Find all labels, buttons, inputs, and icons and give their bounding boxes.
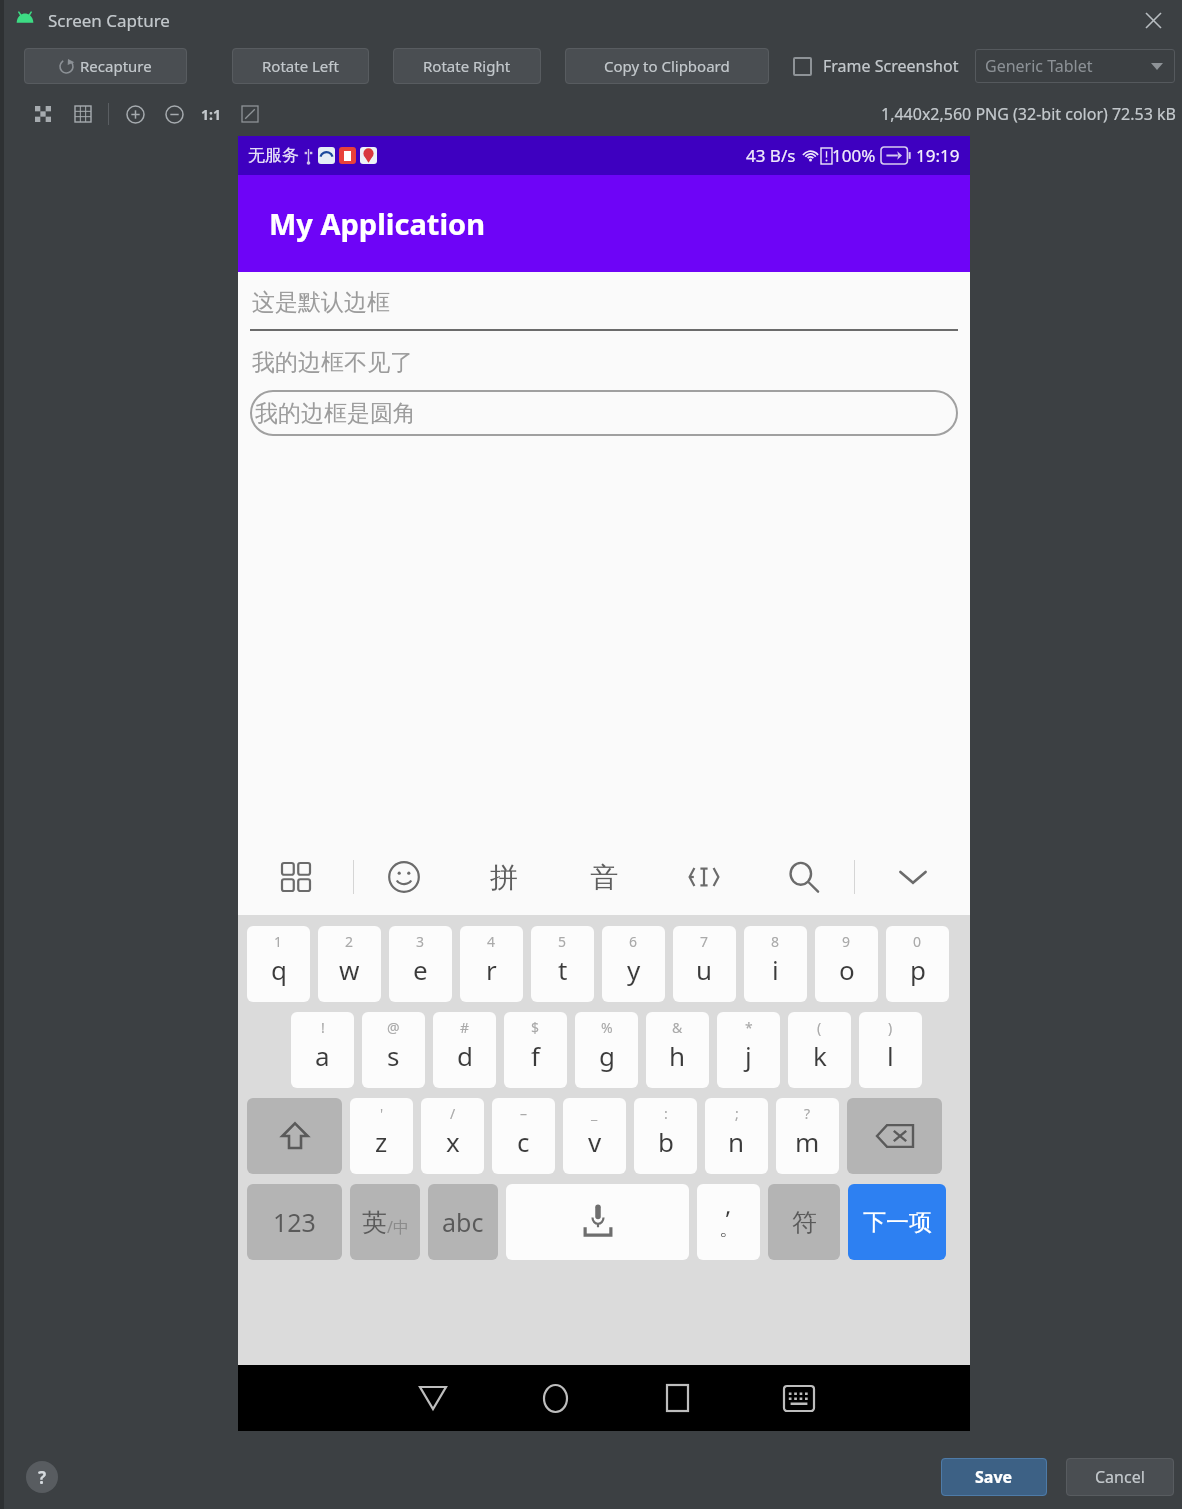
button[interactable]: 英 xyxy=(350,1184,420,1260)
button[interactable]: , xyxy=(697,1184,760,1260)
staticText: 拼 xyxy=(490,860,518,895)
button[interactable]: $ xyxy=(504,1012,567,1088)
button[interactable]: Home xyxy=(494,1365,616,1431)
staticText: k xyxy=(813,1038,827,1073)
staticText: Screen Capture xyxy=(48,9,170,32)
button[interactable]: Voice input xyxy=(506,1184,689,1260)
button[interactable]: Search xyxy=(754,839,854,915)
staticText: 4 xyxy=(487,932,496,951)
button[interactable]: 下一项 xyxy=(848,1184,946,1260)
staticText: My Application xyxy=(269,204,486,243)
staticText: : xyxy=(664,1104,668,1123)
staticText: /中 xyxy=(387,1216,409,1238)
staticText: $ xyxy=(531,1018,540,1037)
button[interactable]: Recapture xyxy=(24,48,187,84)
button[interactable]: 拼 xyxy=(454,839,554,915)
button[interactable]: 5 xyxy=(531,926,594,1002)
button[interactable]: Hide keyboard xyxy=(855,839,970,915)
button[interactable]: Emoji xyxy=(354,839,454,915)
button[interactable]: 1 xyxy=(247,926,310,1002)
button[interactable]: Shift xyxy=(247,1098,342,1174)
staticText: a xyxy=(315,1038,330,1073)
staticText: 2 xyxy=(345,932,354,951)
staticText: 英 xyxy=(362,1207,387,1238)
staticText: f xyxy=(531,1038,540,1073)
staticText: Save xyxy=(975,1466,1013,1488)
button[interactable]: 8 xyxy=(744,926,807,1002)
button[interactable]: Cursor move xyxy=(654,839,754,915)
button[interactable]: Recents xyxy=(616,1365,738,1431)
button[interactable]: 音 xyxy=(554,839,654,915)
button[interactable]: 2 xyxy=(318,926,381,1002)
staticText: e xyxy=(413,952,428,987)
button[interactable]: / xyxy=(421,1098,484,1174)
staticText: – xyxy=(520,1104,527,1123)
button[interactable]: Switch keyboard xyxy=(738,1365,860,1431)
staticText: 下一项 xyxy=(863,1208,932,1237)
button[interactable]: Frame Screenshot xyxy=(791,55,961,77)
button[interactable]: Generic Tablet xyxy=(975,49,1175,83)
button[interactable]: ( xyxy=(788,1012,851,1088)
staticText: l xyxy=(887,1038,894,1073)
button[interactable]: Copy to Clipboard xyxy=(565,48,769,84)
button[interactable]: 123 xyxy=(247,1184,342,1260)
button[interactable]: Grid xyxy=(70,101,96,127)
button[interactable]: @ xyxy=(362,1012,425,1088)
staticText: & xyxy=(672,1018,683,1037)
staticText: 0 xyxy=(913,932,922,951)
staticText: 9 xyxy=(842,932,851,951)
staticText: h xyxy=(669,1038,686,1073)
staticText: m xyxy=(795,1124,820,1159)
staticText: b xyxy=(658,1124,674,1159)
button[interactable]: Help xyxy=(26,1461,58,1493)
staticText: 7 xyxy=(700,932,709,951)
button[interactable]: ? xyxy=(776,1098,839,1174)
staticText: # xyxy=(460,1018,470,1037)
staticText: ; xyxy=(735,1104,739,1123)
button[interactable]: Rotate Left xyxy=(232,48,369,84)
staticText: 123 xyxy=(273,1205,316,1239)
button[interactable]: ; xyxy=(705,1098,768,1174)
button[interactable]: Zoom out xyxy=(160,100,188,128)
button[interactable]: 3 xyxy=(389,926,452,1002)
button[interactable]: – xyxy=(492,1098,555,1174)
button[interactable]: Cancel xyxy=(1066,1458,1174,1496)
button[interactable]: Back xyxy=(372,1365,494,1431)
staticText: q xyxy=(271,952,287,987)
button[interactable]: abc xyxy=(428,1184,498,1260)
button[interactable]: Save xyxy=(941,1458,1047,1496)
button[interactable]: Fit to window xyxy=(237,101,263,127)
button[interactable]: Transparency xyxy=(30,101,56,127)
button[interactable]: ' xyxy=(350,1098,413,1174)
button[interactable]: 符 xyxy=(768,1184,840,1260)
button[interactable]: 1:1 xyxy=(199,103,223,126)
button[interactable]: 4 xyxy=(460,926,523,1002)
staticText: y xyxy=(627,952,641,987)
staticText: Frame Screenshot xyxy=(823,55,959,77)
staticText: * xyxy=(745,1018,753,1037)
button[interactable]: 我的边框是圆角 xyxy=(250,390,958,436)
button[interactable]: Keyboard modes xyxy=(238,839,353,915)
button[interactable]: ! xyxy=(291,1012,354,1088)
staticText: j xyxy=(745,1038,752,1073)
staticText: Rotate Right xyxy=(423,56,511,76)
button[interactable]: ) xyxy=(859,1012,922,1088)
button[interactable]: % xyxy=(575,1012,638,1088)
staticText: ( xyxy=(817,1018,822,1037)
button[interactable]: 0 xyxy=(886,926,949,1002)
button[interactable]: # xyxy=(433,1012,496,1088)
button[interactable]: _ xyxy=(563,1098,626,1174)
button[interactable]: : xyxy=(634,1098,697,1174)
button[interactable]: 7 xyxy=(673,926,736,1002)
button[interactable]: & xyxy=(646,1012,709,1088)
button[interactable]: 6 xyxy=(602,926,665,1002)
button[interactable]: 9 xyxy=(815,926,878,1002)
button[interactable]: Close xyxy=(1138,5,1168,35)
button[interactable]: Rotate Right xyxy=(393,48,541,84)
staticText: ? xyxy=(38,1466,47,1489)
staticText: 无服务 xyxy=(248,145,299,166)
button[interactable]: * xyxy=(717,1012,780,1088)
button[interactable]: Zoom in xyxy=(121,100,149,128)
staticText: s xyxy=(387,1038,400,1073)
button[interactable]: Backspace xyxy=(847,1098,942,1174)
